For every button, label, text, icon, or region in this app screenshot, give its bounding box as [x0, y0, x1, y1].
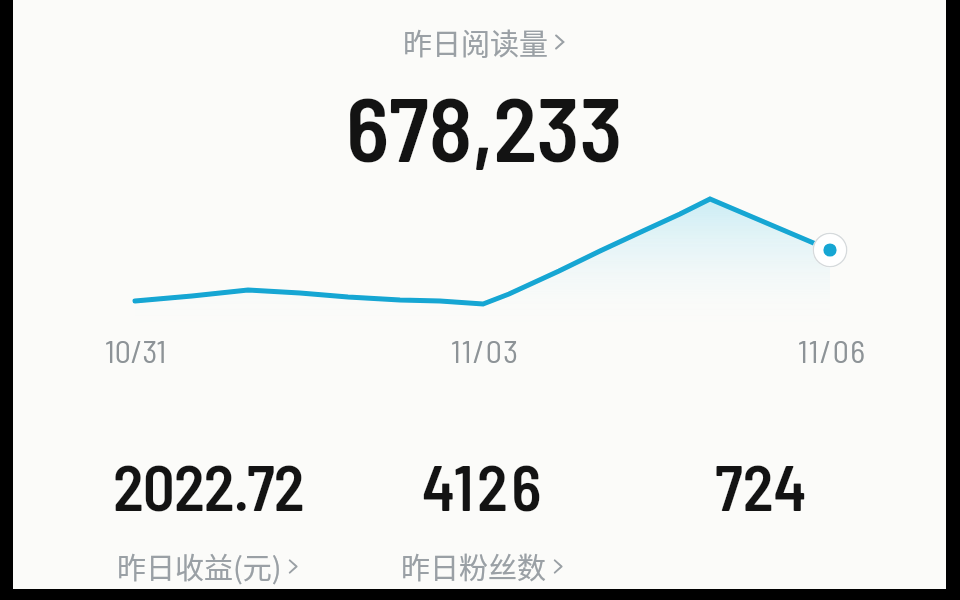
- staticText: 678,233: [346, 72, 623, 180]
- staticText: 昨日收益(元): [117, 545, 282, 587]
- button[interactable]: 4126: [347, 448, 619, 589]
- staticText: 724: [715, 448, 807, 524]
- button[interactable]: 昨日新增作品数: [625, 448, 897, 589]
- staticText: 2022.72: [113, 448, 304, 524]
- staticText: 4126: [422, 448, 545, 524]
- staticText: 11/06: [798, 331, 867, 369]
- button[interactable]: 昨日阅读量: [403, 21, 568, 63]
- staticText: 11/03: [451, 331, 520, 369]
- staticText: 昨日粉丝数: [401, 545, 547, 587]
- button[interactable]: 2022.72: [72, 448, 344, 589]
- staticText: 昨日阅读量: [403, 21, 549, 63]
- staticText: 10/31: [105, 331, 167, 369]
